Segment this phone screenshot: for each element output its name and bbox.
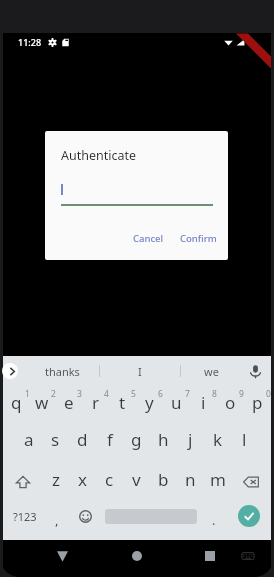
staticText: p <box>252 391 263 414</box>
staticText: v <box>132 468 141 491</box>
button[interactable]: v <box>123 464 150 494</box>
button[interactable]: Backspace <box>231 464 271 494</box>
button[interactable]: . <box>202 501 226 531</box>
staticText: k <box>213 428 223 451</box>
staticText: 6 <box>158 388 163 400</box>
staticText: i <box>201 391 206 414</box>
button[interactable]: u <box>163 387 190 417</box>
button[interactable]: f <box>96 424 123 454</box>
staticText: 5 <box>131 388 136 400</box>
button[interactable]: Emoji <box>73 501 97 531</box>
button[interactable]: Home <box>126 545 148 567</box>
button[interactable]: q <box>3 387 29 417</box>
staticText: we <box>204 364 219 379</box>
button[interactable]: Confirm <box>174 228 223 249</box>
staticText: j <box>188 428 193 451</box>
button[interactable]: a <box>16 424 42 454</box>
button[interactable]: j <box>177 424 204 454</box>
staticText: g <box>131 428 142 451</box>
button[interactable]: p <box>244 387 271 417</box>
staticText: . <box>212 511 216 529</box>
button[interactable]: Done <box>225 501 273 531</box>
button[interactable]: y <box>136 387 163 417</box>
staticText: , <box>55 511 59 529</box>
button[interactable] <box>100 501 202 531</box>
staticText: w <box>35 391 49 414</box>
staticText: 9 <box>239 388 244 400</box>
button[interactable]: I <box>99 356 180 386</box>
button[interactable]: w <box>29 387 55 417</box>
button[interactable]: c <box>96 464 123 494</box>
button[interactable]: Back <box>51 545 73 567</box>
staticText: thanks <box>45 364 80 379</box>
staticText: f <box>107 428 113 451</box>
button[interactable]: h <box>150 424 177 454</box>
button[interactable]: s <box>42 424 69 454</box>
staticText: m <box>210 468 226 491</box>
staticText: 11:28 <box>18 36 42 48</box>
staticText: 7 <box>185 388 190 400</box>
button[interactable]: Recent apps <box>199 545 221 567</box>
button[interactable]: e <box>55 387 82 417</box>
button[interactable]: Voice input <box>248 364 263 379</box>
staticText: Authenticate <box>61 147 137 164</box>
button[interactable]: r <box>82 387 109 417</box>
button[interactable]: d <box>69 424 96 454</box>
staticText: o <box>225 391 236 414</box>
button[interactable]: t <box>109 387 136 417</box>
staticText: a <box>24 428 34 451</box>
button[interactable]: o <box>217 387 244 417</box>
staticText: 1 <box>25 388 30 400</box>
button[interactable]: we <box>180 356 242 386</box>
staticText: 8 <box>212 388 217 400</box>
staticText: 3 <box>77 388 82 400</box>
staticText: h <box>158 428 169 451</box>
staticText: ?123 <box>13 509 37 524</box>
staticText: 2 <box>51 388 56 400</box>
staticText: t <box>119 391 126 414</box>
staticText: b <box>158 468 169 491</box>
staticText: d <box>77 428 88 451</box>
button[interactable]: g <box>123 424 150 454</box>
staticText: 4 <box>104 388 109 400</box>
staticText: I <box>138 364 142 379</box>
staticText: e <box>64 391 74 414</box>
button[interactable]: x <box>69 464 96 494</box>
button[interactable]: z <box>42 464 69 494</box>
staticText: r <box>92 391 100 414</box>
button[interactable]: n <box>177 464 204 494</box>
button[interactable]: Cancel <box>127 228 170 249</box>
staticText: s <box>51 428 60 451</box>
button[interactable]: b <box>150 464 177 494</box>
button[interactable]: m <box>204 464 231 494</box>
staticText: n <box>185 468 196 491</box>
button[interactable]: Switch keyboard <box>237 545 259 567</box>
staticText: y <box>145 391 154 414</box>
staticText: Cancel <box>133 232 164 245</box>
button[interactable]: thanks <box>25 356 99 386</box>
staticText: z <box>52 468 60 491</box>
button[interactable]: l <box>231 424 258 454</box>
staticText: q <box>11 391 22 414</box>
staticText: 0 <box>266 388 271 400</box>
staticText: u <box>171 391 182 414</box>
button[interactable]: , <box>45 501 69 531</box>
staticText: x <box>78 468 87 491</box>
button[interactable]: i <box>190 387 217 417</box>
button[interactable]: k <box>204 424 231 454</box>
button[interactable]: More suggestions <box>2 363 18 379</box>
button[interactable]: Shift <box>3 464 42 494</box>
staticText: l <box>242 428 247 451</box>
staticText: c <box>105 468 114 491</box>
staticText: Confirm <box>180 232 217 245</box>
button[interactable]: ?123 <box>1 501 49 531</box>
